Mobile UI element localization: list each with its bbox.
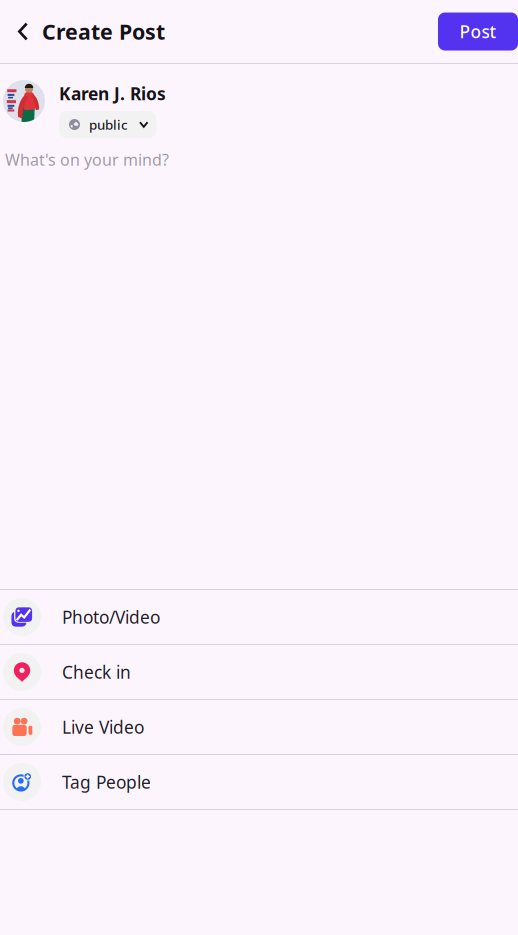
staticText: Photo/Video xyxy=(62,605,160,628)
staticText: Tag People xyxy=(62,770,151,793)
button[interactable]: Check in xyxy=(0,645,518,699)
staticText: Create Post xyxy=(42,17,165,46)
button[interactable]: Live Video xyxy=(0,700,518,754)
staticText: Karen J. Rios xyxy=(59,82,166,105)
staticText: Live Video xyxy=(62,715,144,738)
staticText: public xyxy=(89,116,128,133)
staticText: Check in xyxy=(62,660,131,683)
button[interactable]: Post xyxy=(438,12,518,50)
button[interactable]: public xyxy=(59,111,156,138)
staticText: Post xyxy=(459,20,496,43)
button[interactable]: Tag People xyxy=(0,755,518,809)
button[interactable]: Photo/Video xyxy=(0,590,518,644)
staticText: What's on your mind? xyxy=(5,149,169,170)
button[interactable]: Back xyxy=(0,0,39,62)
